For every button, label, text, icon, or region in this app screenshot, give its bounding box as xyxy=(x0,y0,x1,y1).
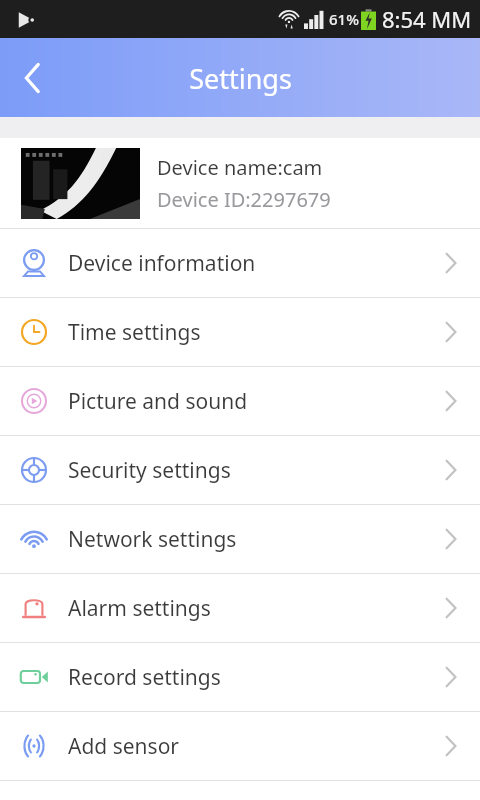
staticText: Time settings xyxy=(68,318,201,347)
staticText: Device ID:2297679 xyxy=(157,186,331,213)
button[interactable]: Add sensor xyxy=(0,712,480,780)
button[interactable]: Time settings xyxy=(0,298,480,366)
button[interactable]: Device information xyxy=(0,229,480,297)
staticText: Add sensor xyxy=(68,732,180,761)
staticText: Record settings xyxy=(68,663,221,692)
staticText: Picture and sound xyxy=(68,387,248,416)
staticText: Device name:cam xyxy=(157,154,323,181)
staticText: Settings xyxy=(189,60,292,97)
staticText: Security settings xyxy=(68,456,231,485)
button[interactable]: Alarm settings xyxy=(0,574,480,642)
staticText: Alarm settings xyxy=(68,594,211,623)
staticText: Device information xyxy=(68,249,256,278)
staticText: 61% xyxy=(329,9,359,29)
button[interactable]: Picture and sound xyxy=(0,367,480,435)
button[interactable]: Network settings xyxy=(0,505,480,573)
button[interactable]: Record settings xyxy=(0,643,480,711)
button[interactable]: Back xyxy=(0,38,66,117)
button[interactable]: Device name:cam xyxy=(0,138,480,228)
button[interactable]: Security settings xyxy=(0,436,480,504)
staticText: Network settings xyxy=(68,525,237,554)
staticText: 8:54 MM xyxy=(382,4,472,34)
